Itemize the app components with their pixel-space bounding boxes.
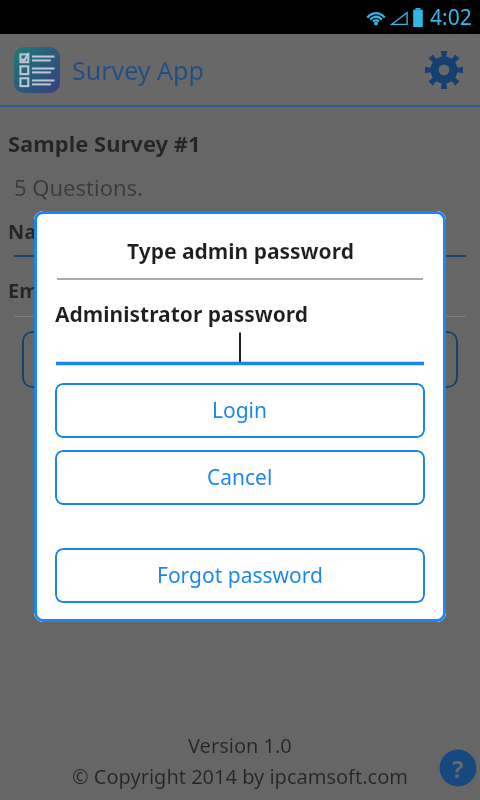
staticText: © Copyright 2014 by ipcamsoft.com <box>72 763 408 790</box>
button[interactable]: Settings <box>422 48 466 92</box>
staticText: ? <box>452 752 464 785</box>
staticText: Sample Survey #1 <box>8 128 201 158</box>
staticText: Administrator password <box>55 300 309 329</box>
staticText: Name <box>8 218 68 245</box>
button[interactable]: Forgot password <box>55 548 425 603</box>
staticText: Version 1.0 <box>188 732 292 759</box>
button[interactable] <box>22 331 458 388</box>
button[interactable]: Login <box>55 383 425 438</box>
staticText: Email <box>8 277 63 304</box>
staticText: Forgot password <box>157 561 323 590</box>
staticText: Type admin password <box>127 237 354 266</box>
staticText: 4:02 <box>430 3 472 32</box>
staticText: Cancel <box>207 463 273 492</box>
button[interactable]: Cancel <box>55 450 425 505</box>
staticText: Login <box>212 396 268 425</box>
button[interactable] <box>56 329 424 365</box>
staticText: 5 Questions. <box>14 172 143 202</box>
staticText: Survey App <box>72 53 204 87</box>
button[interactable]: Help <box>438 748 478 788</box>
